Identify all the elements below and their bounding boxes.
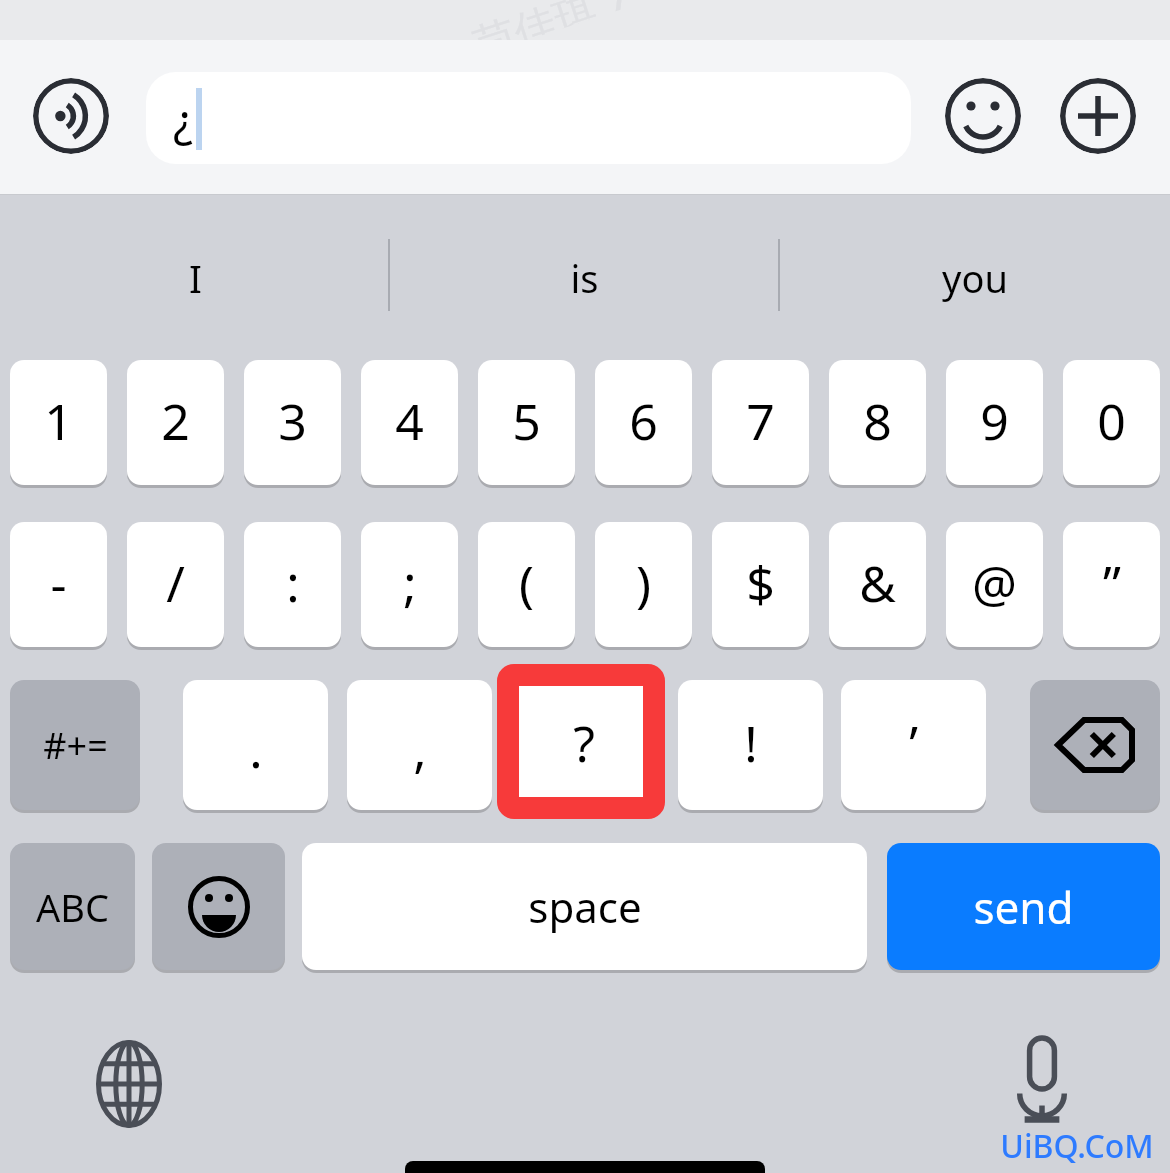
button[interactable]: I <box>45 245 345 311</box>
button[interactable]: & <box>829 522 926 647</box>
staticText: 苘佳琪 7 <box>466 0 631 56</box>
button[interactable]: $ <box>712 522 809 647</box>
button[interactable]: 1 <box>10 360 107 485</box>
button[interactable]: 9 <box>946 360 1043 485</box>
staticText: 8 <box>863 387 892 455</box>
button[interactable]: Audio message <box>33 78 109 154</box>
staticText: . <box>249 715 263 783</box>
staticText: send <box>973 877 1074 937</box>
button[interactable]: ? <box>511 680 656 810</box>
staticText: ” <box>1103 549 1121 617</box>
staticText: 4 <box>395 387 424 455</box>
button[interactable]: ) <box>595 522 692 647</box>
button[interactable]: send <box>887 843 1160 970</box>
staticText: 5 <box>512 387 541 455</box>
button[interactable]: @ <box>946 522 1043 647</box>
staticText: ¿ <box>173 88 193 151</box>
staticText: ABC <box>36 881 109 933</box>
staticText: , <box>413 715 427 783</box>
button[interactable]: 4 <box>361 360 458 485</box>
staticText: : <box>286 549 300 617</box>
button[interactable]: , <box>347 680 492 810</box>
staticText: #+= <box>43 721 108 770</box>
button[interactable]: is <box>434 245 734 311</box>
button[interactable]: / <box>127 522 224 647</box>
staticText: ’ <box>909 709 918 777</box>
staticText: ? <box>573 709 595 777</box>
button[interactable]: - <box>10 522 107 647</box>
button[interactable]: ; <box>361 522 458 647</box>
staticText: space <box>528 878 642 935</box>
button[interactable]: Delete <box>1030 680 1160 810</box>
staticText: is <box>570 252 599 304</box>
staticText: - <box>50 549 67 617</box>
button[interactable]: ( <box>478 522 575 647</box>
button[interactable]: ABC <box>10 843 135 970</box>
button[interactable]: . <box>183 680 328 810</box>
button[interactable]: you <box>825 245 1125 311</box>
button[interactable]: 6 <box>595 360 692 485</box>
button[interactable]: ! <box>678 680 823 810</box>
staticText: I <box>189 252 202 304</box>
staticText: 2 <box>161 387 190 455</box>
staticText: @ <box>972 549 1017 617</box>
button[interactable]: space <box>302 843 867 970</box>
button[interactable]: Emoji <box>152 843 285 970</box>
staticText: ) <box>636 549 651 617</box>
button[interactable]: 3 <box>244 360 341 485</box>
button[interactable]: 2 <box>127 360 224 485</box>
button[interactable]: : <box>244 522 341 647</box>
button[interactable]: 7 <box>712 360 809 485</box>
staticText: ! <box>744 709 758 777</box>
staticText: 3 <box>278 387 307 455</box>
button[interactable]: ’ <box>841 680 986 810</box>
staticText: 9 <box>980 387 1009 455</box>
button[interactable]: Dictation <box>998 1036 1086 1124</box>
button[interactable]: ” <box>1063 522 1160 647</box>
staticText: & <box>859 549 896 617</box>
button[interactable]: #+= <box>10 680 140 810</box>
button[interactable]: 0 <box>1063 360 1160 485</box>
staticText: / <box>166 549 185 617</box>
button[interactable]: 5 <box>478 360 575 485</box>
staticText: $ <box>746 549 775 617</box>
staticText: you <box>942 252 1008 304</box>
staticText: UiBQ.CoM <box>1000 1124 1154 1168</box>
staticText: 6 <box>629 387 658 455</box>
button[interactable]: Add attachment <box>1060 78 1136 154</box>
button[interactable]: 8 <box>829 360 926 485</box>
button[interactable]: Change keyboard <box>85 1040 173 1128</box>
button[interactable]: ¿ <box>146 72 911 164</box>
button[interactable]: Stickers <box>945 78 1021 154</box>
staticText: 7 <box>746 387 775 455</box>
staticText: 1 <box>44 387 73 455</box>
staticText: 0 <box>1097 387 1126 455</box>
staticText: ; <box>403 549 417 617</box>
staticText: ( <box>519 549 534 617</box>
